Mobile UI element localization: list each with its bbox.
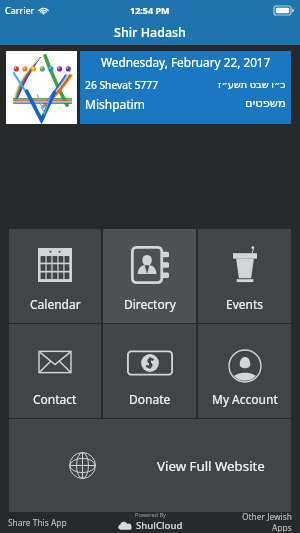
staticText: Carrier [5,4,35,16]
button[interactable]: Calendar [9,229,101,323]
staticText: Wednesday, February 22, 2017 [101,54,271,70]
button[interactable]: Events [198,229,291,323]
button[interactable]: My Account [198,324,291,418]
button[interactable]: Powered By [118,511,183,532]
staticText: Share This App [8,517,67,528]
staticText: Shir Hadash [114,24,186,41]
staticText: Contact [33,391,77,407]
button[interactable]: Contact [9,324,101,418]
staticText: Calendar [30,296,81,312]
button[interactable]: Directory [103,229,196,323]
staticText: My Account [212,391,278,407]
staticText: Powered By [135,511,166,519]
staticText: Directory [124,296,176,312]
button[interactable]: Donate [103,324,196,418]
staticText: כ״ו שבט תשע״ז [218,78,286,91]
staticText: View Full Website [157,457,265,475]
button[interactable]: Other Jewish [242,511,292,532]
button[interactable]: Share This App [8,517,67,528]
button[interactable]: View Full Website [9,419,291,512]
staticText: משפטים [245,96,286,109]
staticText: Events [226,296,264,312]
staticText: Apps [272,522,292,532]
staticText: Other Jewish [242,511,292,522]
staticText: Mishpatim [85,96,145,112]
staticText: Donate [129,391,171,407]
staticText: ShulCloud [136,519,183,532]
staticText: 12:54 PM [130,4,170,16]
staticText: 26 Shevat 5777 [85,78,159,92]
